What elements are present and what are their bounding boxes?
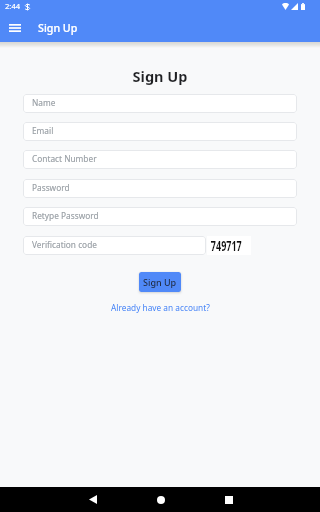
staticText: Retype Password xyxy=(32,210,99,221)
button[interactable]: Contact Number xyxy=(23,150,297,169)
staticText: Password xyxy=(32,182,70,193)
staticText: Contact Number xyxy=(32,153,97,164)
button[interactable]: Email xyxy=(23,122,297,141)
button[interactable]: Menu xyxy=(4,17,26,39)
staticText: Verification code xyxy=(32,239,97,250)
staticText: Sign Up xyxy=(143,276,177,288)
button[interactable]: Password xyxy=(23,179,297,198)
staticText: Email xyxy=(32,125,54,136)
staticText: Name xyxy=(32,97,56,108)
button[interactable]: Recents xyxy=(218,489,239,510)
button[interactable]: Back xyxy=(82,489,103,510)
staticText: 2:44 xyxy=(5,1,21,11)
staticText: Sign Up xyxy=(0,66,320,86)
staticText: Sign Up xyxy=(38,21,78,36)
button[interactable]: Name xyxy=(23,94,297,113)
button[interactable]: Already have an account? xyxy=(111,302,210,313)
staticText: 749717 xyxy=(211,237,242,255)
button[interactable]: Home xyxy=(150,489,171,510)
button[interactable]: Verification code xyxy=(23,236,206,255)
button[interactable]: Retype Password xyxy=(23,207,297,226)
button[interactable]: Sign Up xyxy=(139,272,181,292)
